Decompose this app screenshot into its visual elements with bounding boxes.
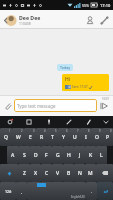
staticText: E: [29, 134, 32, 141]
button[interactable]: Hi: [62, 74, 109, 91]
button[interactable]: K: [85, 146, 96, 164]
staticText: 4: [44, 129, 46, 133]
staticText: Dee Dee: [19, 14, 41, 21]
staticText: Today: [60, 65, 70, 70]
staticText: X: [34, 170, 38, 177]
button[interactable]: D: [30, 146, 41, 164]
staticText: 9: [99, 129, 101, 133]
button[interactable]: [96, 164, 113, 182]
button[interactable]: Type text message: [14, 99, 97, 112]
button[interactable]: C: [41, 164, 52, 182]
staticText: W: [16, 134, 21, 141]
button[interactable]: Hide keyboard: [99, 116, 113, 128]
staticText: D: [34, 152, 38, 159]
button[interactable]: Z: [18, 164, 30, 182]
staticText: R: [40, 134, 44, 141]
staticText: Sent 17:07: [72, 85, 88, 89]
button[interactable]: [97, 182, 113, 200]
staticText: 7: [77, 129, 79, 133]
button[interactable]: P: [102, 128, 113, 146]
button[interactable]: H: [63, 146, 74, 164]
button[interactable]: J: [74, 146, 85, 164]
button[interactable]: Handwriting: [79, 116, 99, 128]
staticText: S: [23, 152, 26, 159]
staticText: Type text message: [17, 103, 56, 109]
staticText: 5: [55, 129, 57, 133]
staticText: 160/1: [102, 97, 110, 101]
button[interactable]: Emoji: [0, 116, 19, 128]
button[interactable]: L: [96, 146, 107, 164]
button[interactable]: [0, 164, 18, 182]
button[interactable]: T: [47, 128, 58, 146]
staticText: F: [45, 152, 48, 159]
staticText: P: [106, 134, 110, 141]
staticText: 0: [110, 129, 112, 133]
button[interactable]: Y: [58, 128, 69, 146]
button[interactable]: A: [7, 146, 19, 164]
staticText: 6: [66, 129, 68, 133]
staticText: G: [56, 152, 60, 159]
staticText: 1: [9, 129, 11, 133]
staticText: C: [45, 170, 49, 177]
button[interactable]: N: [74, 164, 85, 182]
staticText: M: [88, 170, 93, 177]
staticText: A: [11, 152, 15, 159]
staticText: 55%: [82, 3, 90, 8]
staticText: Hi: [65, 76, 70, 83]
staticText: 8: [88, 129, 90, 133]
button[interactable]: Back: [2, 12, 18, 28]
button[interactable]: O: [91, 128, 102, 146]
staticText: 3: [33, 129, 35, 133]
button[interactable]: R: [36, 128, 47, 146]
button[interactable]: X: [30, 164, 41, 182]
staticText: Q: [4, 134, 8, 141]
button[interactable]: Attach: [2, 100, 14, 112]
staticText: English(UK): [71, 195, 85, 199]
staticText: 17:10: [100, 3, 111, 8]
button[interactable]: Q: [0, 128, 12, 146]
staticText: H: [67, 152, 71, 159]
button[interactable]: E: [24, 128, 36, 146]
staticText: Z: [23, 170, 26, 177]
button[interactable]: ,: [16, 182, 27, 200]
button[interactable]: Settings: [59, 116, 79, 128]
staticText: Y: [62, 134, 65, 141]
button[interactable]: M: [85, 164, 96, 182]
staticText: J: [79, 152, 81, 159]
button[interactable]: Voice input: [39, 116, 59, 128]
button[interactable]: Add contact: [83, 13, 97, 27]
button[interactable]: Call: [97, 13, 111, 27]
staticText: U: [73, 134, 77, 141]
staticText: L: [100, 152, 103, 159]
staticText: K: [89, 152, 93, 159]
staticText: .: [91, 189, 93, 194]
staticText: O: [95, 134, 99, 141]
staticText: 110408: [19, 21, 31, 26]
button[interactable]: B: [63, 164, 74, 182]
staticText: B: [67, 170, 71, 177]
button[interactable]: Clipboard: [19, 116, 39, 128]
staticText: 12#: [5, 189, 12, 194]
button[interactable]: W: [12, 128, 24, 146]
button[interactable]: Send: [97, 99, 111, 113]
button[interactable]: Space: [27, 182, 86, 200]
button[interactable]: 12#: [0, 182, 16, 200]
staticText: T: [51, 134, 54, 141]
button[interactable]: S: [19, 146, 30, 164]
button[interactable]: .: [86, 182, 97, 200]
staticText: N: [78, 170, 82, 177]
staticText: V: [56, 170, 60, 177]
button[interactable]: I: [80, 128, 91, 146]
staticText: 2: [21, 129, 23, 133]
staticText: ,: [21, 189, 23, 194]
button[interactable]: F: [41, 146, 52, 164]
button[interactable]: U: [69, 128, 80, 146]
staticText: I: [85, 134, 87, 141]
button[interactable]: G: [52, 146, 63, 164]
button[interactable]: V: [52, 164, 63, 182]
